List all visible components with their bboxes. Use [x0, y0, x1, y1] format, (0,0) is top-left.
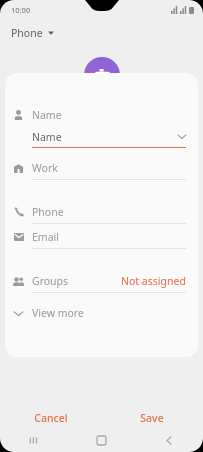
staticText: Save	[140, 411, 164, 425]
staticText: Email	[32, 230, 59, 244]
button[interactable]: Phone	[5, 201, 198, 224]
button[interactable]: Recent apps	[0, 428, 67, 452]
button[interactable]: View more	[5, 301, 198, 325]
staticText: Phone	[32, 205, 64, 219]
button[interactable]: Phone	[9, 24, 56, 42]
button[interactable]: Groups	[5, 270, 198, 293]
staticText: 10:00	[11, 5, 31, 15]
button[interactable]: Back	[135, 428, 203, 452]
staticText: Name	[32, 108, 62, 122]
staticText: Work	[32, 161, 58, 175]
button[interactable]: Cancel	[0, 411, 101, 425]
staticText: Not assigned	[121, 274, 186, 288]
button[interactable]: Work	[5, 157, 198, 180]
button[interactable]: Add contact photo	[84, 57, 120, 93]
staticText: Groups	[32, 274, 121, 288]
staticText: View more	[32, 306, 84, 320]
button[interactable]: Save	[101, 411, 203, 425]
button[interactable]: Home	[67, 428, 135, 452]
button[interactable]: Email	[5, 226, 198, 249]
button[interactable]: Name	[5, 126, 198, 148]
staticText: Phone	[11, 26, 43, 40]
staticText: Cancel	[34, 411, 68, 425]
staticText: Name	[32, 130, 178, 144]
button[interactable]: Name	[5, 104, 198, 126]
